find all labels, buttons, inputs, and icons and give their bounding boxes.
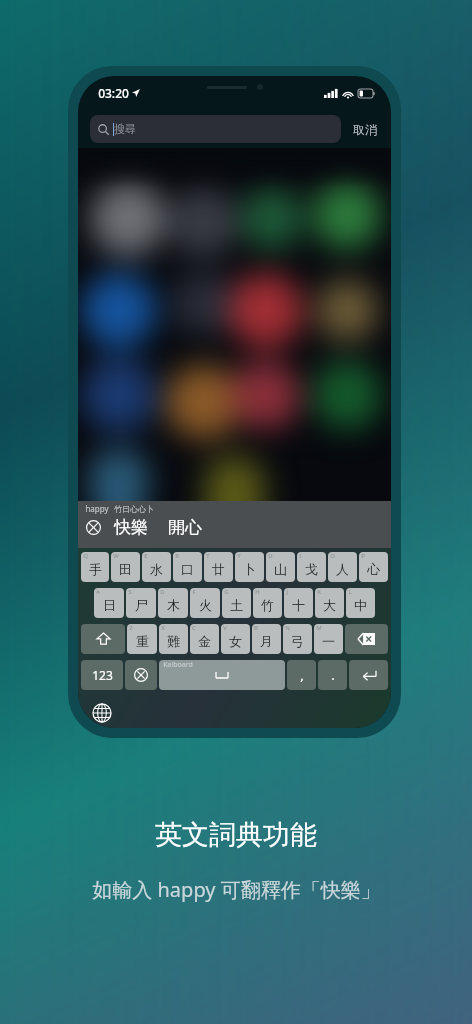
button[interactable]: B	[252, 624, 281, 654]
staticText: 卜	[243, 561, 256, 577]
button[interactable]: O	[328, 552, 357, 582]
staticText: 重	[136, 633, 149, 649]
staticText: Y	[237, 552, 241, 560]
staticText: C	[192, 624, 196, 632]
staticText: 心	[367, 561, 380, 577]
button[interactable]: S	[126, 588, 156, 618]
staticText: 手	[89, 561, 102, 577]
button[interactable]: F	[190, 588, 220, 618]
staticText: D	[160, 588, 165, 596]
button[interactable]: .	[318, 660, 347, 690]
button[interactable]: H	[253, 588, 282, 618]
button[interactable]: 搜尋	[90, 115, 341, 143]
staticText: V	[223, 624, 227, 632]
button[interactable]: K	[315, 588, 344, 618]
staticText: 03:20	[98, 85, 129, 101]
staticText: 山	[274, 561, 287, 577]
button[interactable]: J	[284, 588, 313, 618]
staticText: A	[96, 588, 100, 596]
button[interactable]: Switch keyboard	[92, 703, 112, 723]
button[interactable]: T	[204, 552, 233, 582]
button[interactable]: Space	[159, 660, 285, 690]
staticText: 金	[198, 633, 211, 649]
staticText: S	[128, 588, 132, 596]
button[interactable]: Backspace	[345, 624, 388, 654]
staticText: 竹	[261, 597, 274, 613]
staticText: ,	[300, 666, 304, 684]
staticText: 123	[92, 667, 113, 683]
staticText: B	[254, 624, 258, 632]
button[interactable]: Y	[235, 552, 264, 582]
staticText: Z	[129, 624, 133, 632]
button[interactable]: Q	[81, 552, 109, 582]
staticText: U	[268, 552, 273, 560]
staticText: M	[316, 624, 322, 632]
button[interactable]: U	[266, 552, 295, 582]
button[interactable]: C	[190, 624, 219, 654]
button[interactable]: ,	[287, 660, 316, 690]
staticText: 一	[322, 633, 335, 649]
staticText: 英文詞典功能	[155, 818, 317, 852]
staticText: 中	[354, 597, 367, 613]
staticText: 火	[199, 597, 212, 613]
staticText: 快樂	[114, 517, 148, 538]
staticText: T	[206, 552, 210, 560]
button[interactable]: 123	[81, 660, 123, 690]
button[interactable]: P	[359, 552, 388, 582]
button[interactable]: Z	[127, 624, 157, 654]
staticText: H	[255, 588, 260, 596]
staticText: L	[348, 588, 352, 596]
button[interactable]: I	[297, 552, 326, 582]
staticText: 廿	[212, 561, 225, 577]
button[interactable]: X	[159, 624, 188, 654]
button[interactable]: R	[173, 552, 202, 582]
button[interactable]: D	[158, 588, 188, 618]
staticText: X	[161, 624, 165, 632]
button[interactable]: L	[346, 588, 375, 618]
staticText: P	[361, 552, 365, 560]
button[interactable]: Shift	[81, 624, 125, 654]
staticText: 十	[292, 597, 305, 613]
staticText: J	[286, 588, 288, 596]
button[interactable]: N	[283, 624, 312, 654]
staticText: I	[299, 552, 302, 560]
staticText: F	[192, 588, 196, 596]
staticText: W	[113, 552, 119, 560]
button[interactable]: G	[222, 588, 251, 618]
staticText: 如輸入 happy 可翻釋作「快樂」	[92, 876, 381, 903]
staticText: 戈	[305, 561, 318, 577]
staticText: 難	[167, 633, 180, 649]
staticText: 開心	[168, 517, 202, 538]
button[interactable]: Clear input	[85, 519, 102, 536]
button[interactable]: 開心	[166, 517, 204, 538]
button[interactable]: Return	[349, 660, 388, 690]
button[interactable]: 快樂	[112, 517, 150, 538]
button[interactable]: E	[142, 552, 171, 582]
staticText: 竹日心心卜	[114, 504, 154, 514]
staticText: 人	[336, 561, 349, 577]
staticText: 尸	[135, 597, 148, 613]
staticText: 取消	[353, 122, 377, 137]
staticText: G	[224, 588, 229, 596]
staticText: 女	[229, 633, 242, 649]
button[interactable]: 取消	[351, 120, 379, 139]
staticText: 大	[323, 597, 336, 613]
staticText: O	[330, 552, 335, 560]
staticText: 搜尋	[114, 122, 136, 136]
staticText: 土	[230, 597, 243, 613]
staticText: 月	[260, 633, 273, 649]
staticText: 田	[119, 561, 132, 577]
button[interactable]: Clear	[125, 660, 157, 690]
staticText: E	[144, 552, 148, 560]
button[interactable]: M	[314, 624, 343, 654]
button[interactable]: V	[221, 624, 250, 654]
button[interactable]: W	[111, 552, 140, 582]
staticText: N	[285, 624, 290, 632]
staticText: Kaiboard	[163, 660, 193, 670]
staticText: 水	[150, 561, 163, 577]
staticText: .	[331, 666, 335, 684]
staticText: R	[175, 552, 179, 560]
staticText: happy	[85, 503, 109, 514]
button[interactable]: A	[94, 588, 124, 618]
staticText: 口	[181, 561, 194, 577]
